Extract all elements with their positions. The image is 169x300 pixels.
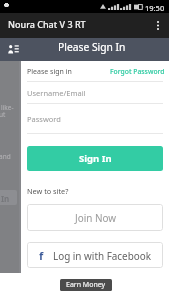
staticText: ut bbox=[0, 110, 6, 119]
staticText: Log in with Facebook bbox=[53, 249, 151, 262]
button[interactable]: New to site? bbox=[27, 186, 69, 196]
staticText: Earn Money bbox=[66, 280, 106, 290]
staticText: and bbox=[0, 152, 11, 161]
staticText: Join Now bbox=[75, 211, 116, 224]
button[interactable]: f bbox=[27, 242, 163, 268]
staticText: Sign In bbox=[79, 152, 112, 165]
staticText: Noura Chat V 3 RT bbox=[8, 18, 86, 30]
button[interactable]: Contacts bbox=[0, 38, 26, 61]
staticText: f bbox=[39, 248, 44, 263]
staticText: In bbox=[1, 193, 10, 204]
staticText: like- bbox=[1, 103, 14, 112]
staticText: New to site? bbox=[27, 186, 69, 196]
button[interactable]: More options bbox=[149, 13, 169, 38]
button[interactable]: Password bbox=[27, 103, 163, 133]
staticText: Password bbox=[27, 114, 61, 124]
staticText: Forgot Password bbox=[110, 67, 165, 76]
button[interactable]: Sign In bbox=[27, 146, 163, 171]
button[interactable]: Forgot Password bbox=[110, 67, 165, 76]
staticText: Please sign in bbox=[27, 67, 72, 77]
button[interactable]: Please sign in bbox=[27, 67, 72, 77]
button[interactable]: Earn Money bbox=[60, 279, 112, 291]
button[interactable]: Join Now bbox=[27, 204, 163, 231]
button[interactable]: Username/Email bbox=[27, 81, 163, 103]
staticText: Username/Email bbox=[27, 88, 86, 98]
staticText: 19:50 bbox=[145, 3, 165, 13]
staticText: Please Sign In bbox=[58, 40, 126, 54]
